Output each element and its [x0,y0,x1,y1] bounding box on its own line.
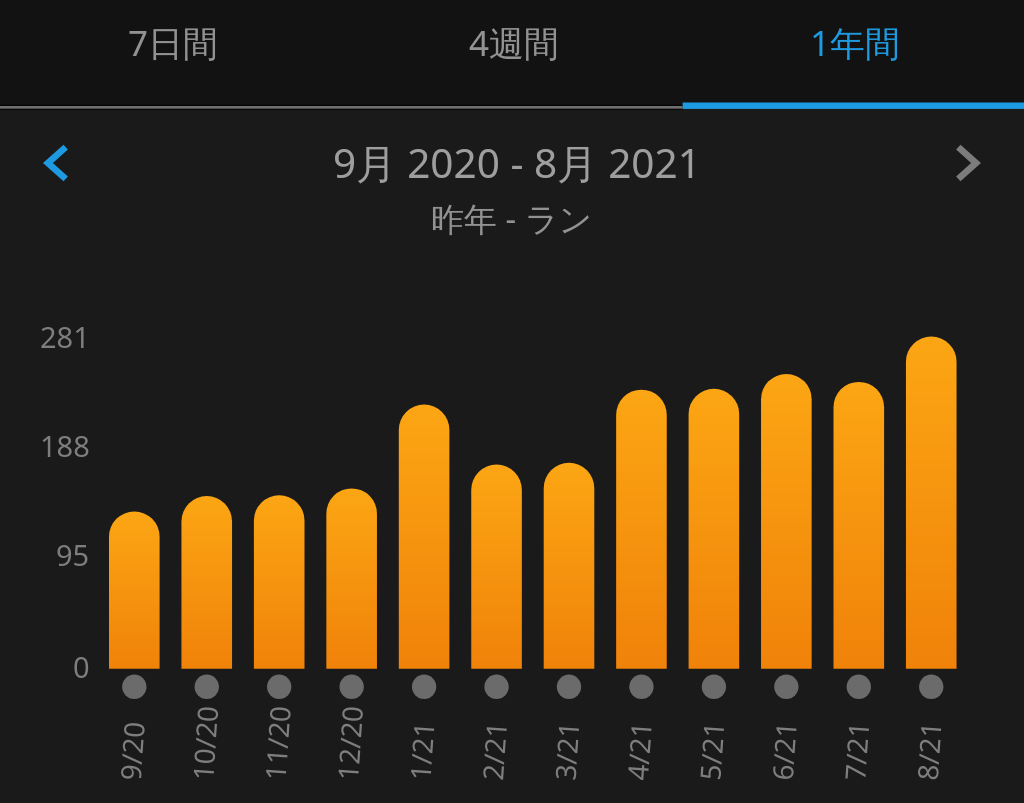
button[interactable]: 11/20 [255,241,306,803]
button[interactable]: 6/21 [766,241,817,803]
button[interactable]: 3/21 [547,241,598,803]
button[interactable]: 9/20 [109,241,160,803]
staticText: 4週間 [469,19,560,67]
button[interactable]: 12/20 [328,241,379,803]
button[interactable]: 1/21 [401,241,452,803]
button[interactable]: 5/21 [693,241,744,803]
staticText: 7日間 [128,19,219,67]
button[interactable]: 10/20 [182,241,233,803]
button[interactable]: 4/21 [620,241,671,803]
button[interactable]: Previous period [20,128,90,198]
staticText: 9月 2020 - 8月 2021 [333,135,701,190]
button[interactable]: 2/21 [474,241,525,803]
staticText: 昨年 - ラン [431,196,593,241]
button[interactable]: 7/21 [839,241,890,803]
button[interactable]: 1年間 [683,0,1024,105]
button[interactable]: 7日間 [0,0,342,105]
button[interactable]: 8/21 [912,241,963,803]
button[interactable]: 4週間 [342,0,683,105]
button[interactable]: Next period [934,128,1004,198]
staticText: 1年間 [810,19,901,67]
